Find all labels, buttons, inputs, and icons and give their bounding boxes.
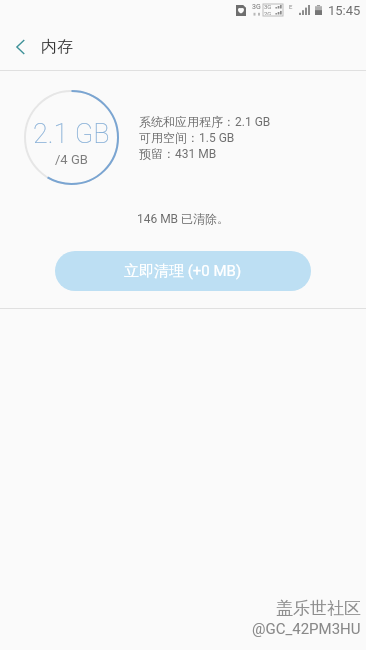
staticText: 盖乐世社区 <box>276 598 361 619</box>
staticText: 146 MB 已清除。 <box>0 211 366 226</box>
staticText: 内存 <box>41 37 73 57</box>
staticText: 系统和应用程序：2.1 GB <box>139 114 271 129</box>
staticText: 2.1 GB <box>33 118 110 150</box>
staticText: 立即清理 (+0 MB) <box>124 262 242 281</box>
button[interactable]: 立即清理 (+0 MB) <box>55 251 311 291</box>
staticText: 3G <box>264 3 272 10</box>
staticText: /4 GB <box>55 152 88 167</box>
staticText: 可用空间：1.5 GB <box>139 130 235 145</box>
staticText: 15:45 <box>328 3 361 18</box>
staticText: 2G <box>264 10 272 15</box>
staticText: 预留：431 MB <box>139 146 217 161</box>
button[interactable]: Back <box>0 27 40 67</box>
staticText: 3G <box>252 3 261 11</box>
staticText: E <box>289 3 293 10</box>
staticText: @GC_42PM3HU <box>252 620 361 638</box>
